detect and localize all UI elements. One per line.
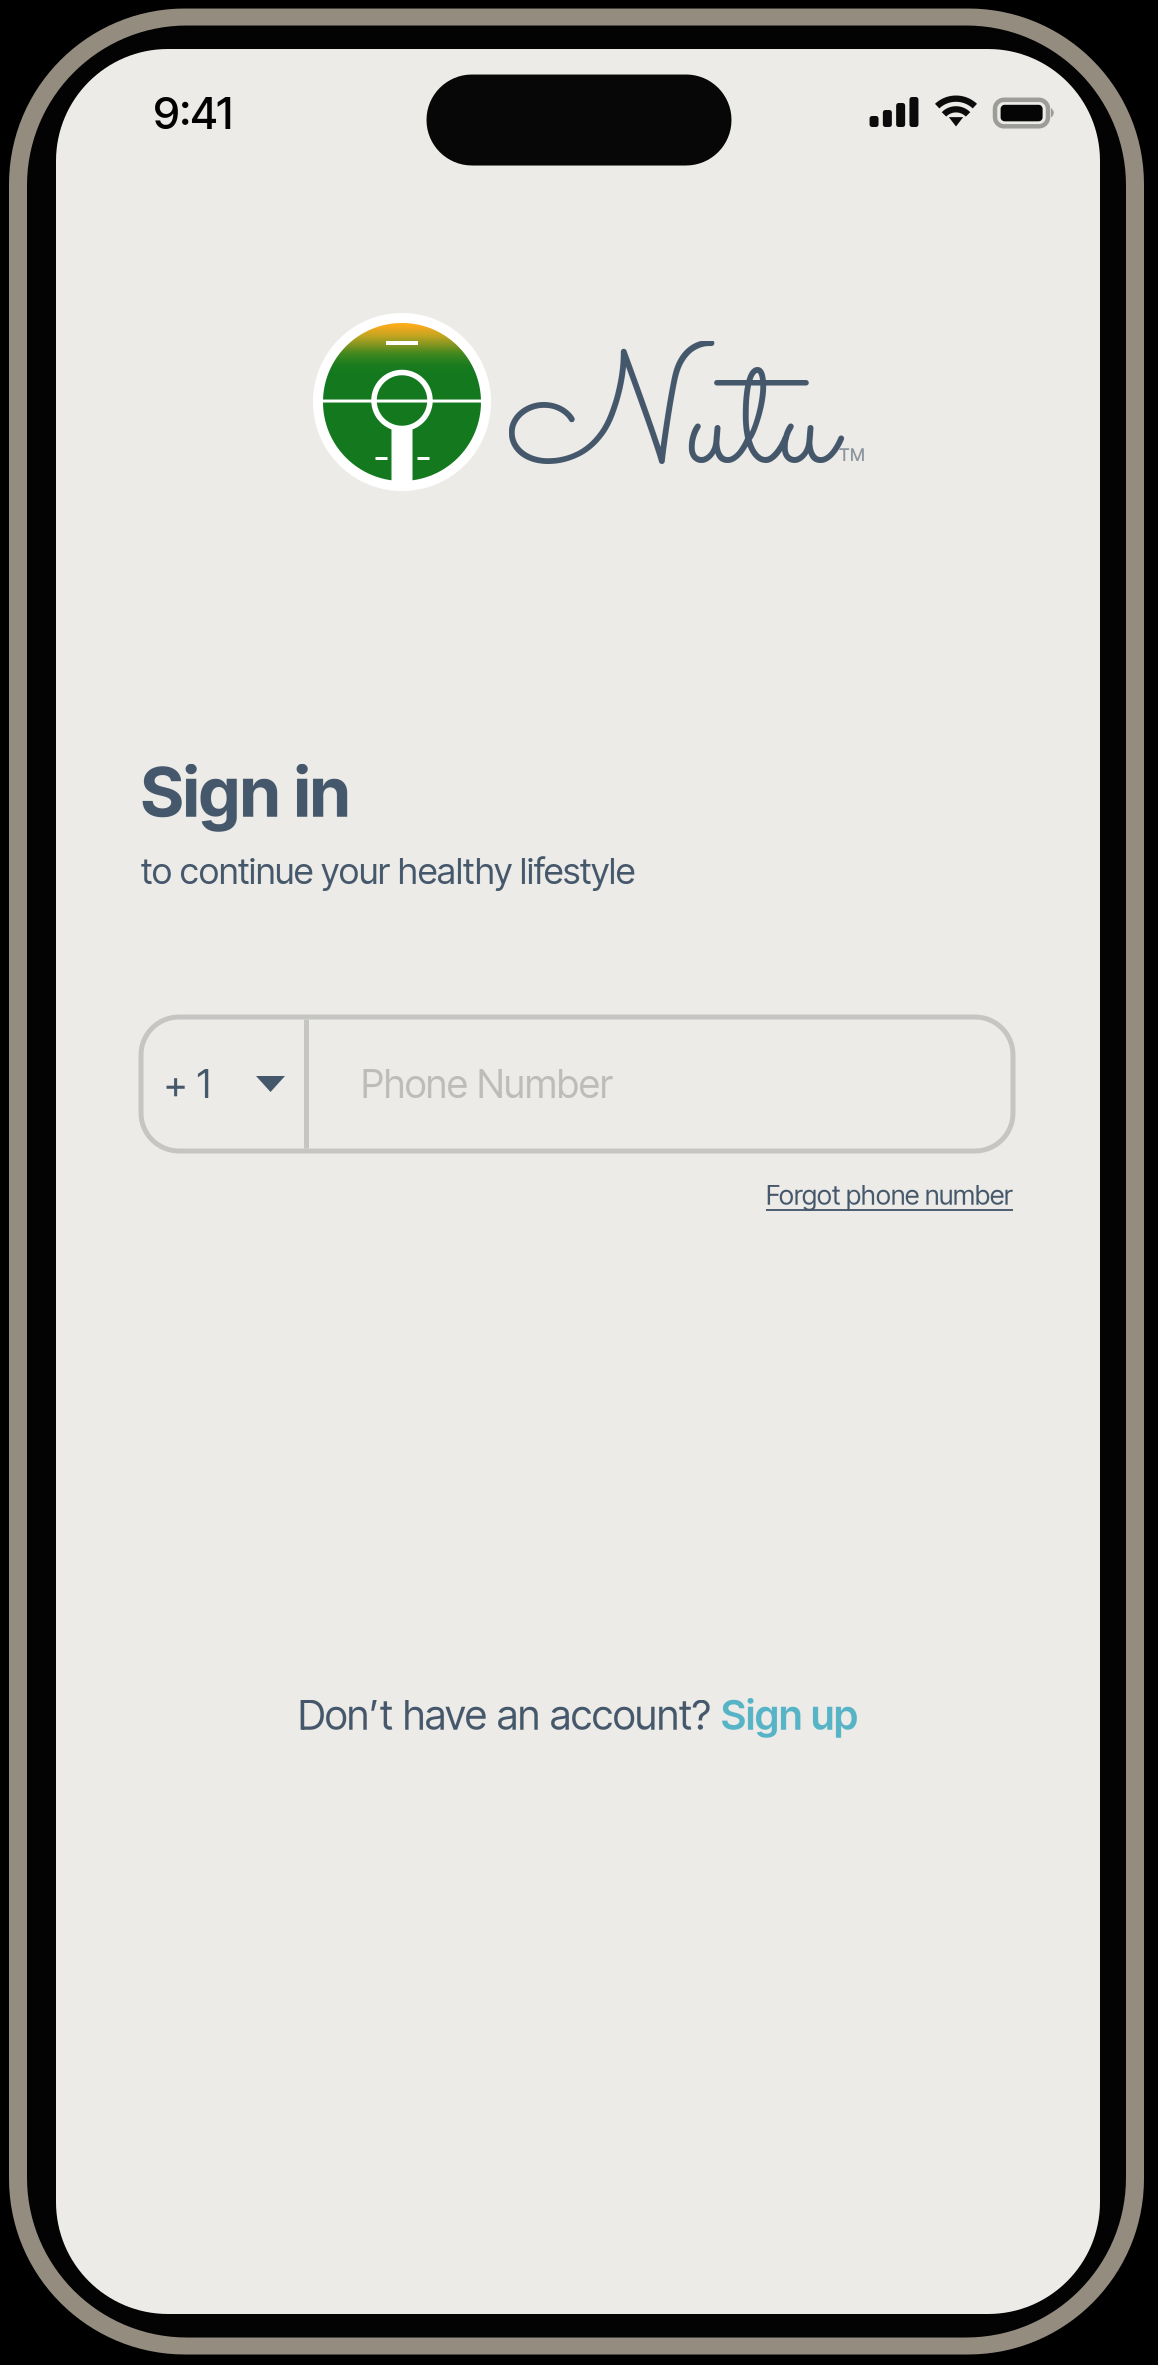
button[interactable]: Forgot phone number [766, 1179, 1013, 1211]
staticText: 9:41 [153, 86, 232, 140]
staticText: to continue your healthy lifestyle [141, 849, 635, 893]
staticText: TM [839, 444, 865, 465]
staticText: Don’t have an account? [298, 1690, 721, 1740]
button[interactable]: Don’t have an account? [298, 1690, 858, 1740]
staticText: + 1 [164, 1061, 211, 1107]
button[interactable]: Phone Number [304, 1017, 1013, 1151]
staticText: Sign up [721, 1690, 858, 1740]
staticText: Forgot phone number [766, 1179, 1013, 1211]
staticText: Sign in [141, 751, 350, 833]
button[interactable]: + 1 [141, 1017, 304, 1151]
staticText: Nutu [506, 313, 835, 547]
staticText: Phone Number [361, 1061, 613, 1107]
